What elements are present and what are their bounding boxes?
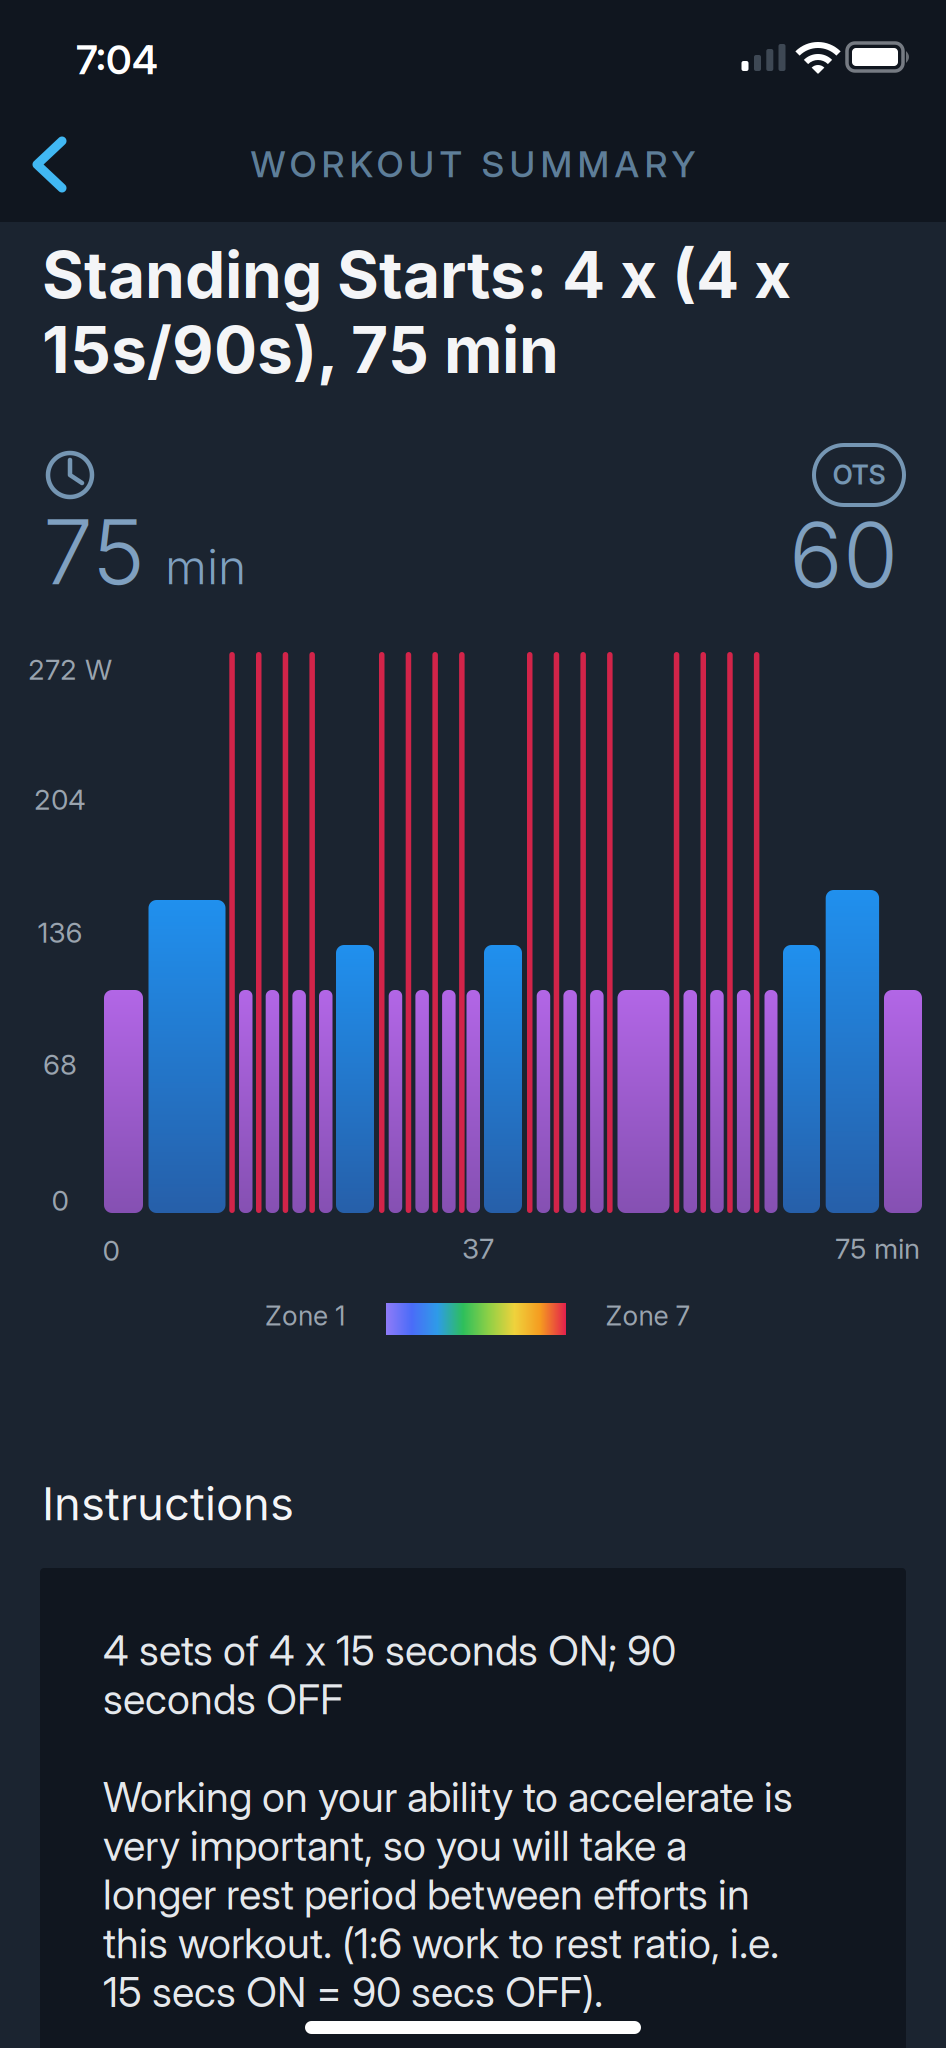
staticText: 204 [34, 783, 86, 816]
staticText: this workout. (1:6 work to rest ratio, i… [103, 1919, 779, 1968]
staticText: 15 secs ON = 90 secs OFF). [103, 1968, 603, 2016]
staticText: 60 [789, 502, 898, 607]
staticText: Zone 7 [605, 1300, 690, 1331]
staticText: longer rest period between efforts in [103, 1870, 750, 1919]
staticText: 4 sets of 4 x 15 seconds ON; 90 [103, 1626, 676, 1675]
staticText: seconds OFF [103, 1675, 343, 1724]
staticText: min [165, 538, 246, 595]
staticText: 15s/90s), 75 min [42, 312, 559, 387]
staticText: 136 [37, 916, 82, 949]
staticText: WORKOUT SUMMARY [250, 143, 695, 185]
staticText: Instructions [42, 1477, 294, 1530]
staticText: 7:04 [76, 36, 158, 83]
staticText: Working on your ability to accelerate is [103, 1772, 793, 1821]
staticText: 0 [51, 1184, 68, 1217]
staticText: 68 [43, 1048, 77, 1081]
staticText: 75 min [835, 1232, 920, 1265]
staticText: 272 W [28, 653, 112, 686]
staticText: Standing Starts: 4 x (4 x [42, 237, 791, 312]
staticText: 75 [43, 499, 145, 604]
staticText: 37 [462, 1232, 494, 1265]
staticText: OTS [832, 459, 885, 490]
staticText: 0 [102, 1234, 119, 1267]
staticText: Zone 1 [265, 1300, 345, 1331]
staticText: very important, so you will take a [103, 1821, 687, 1870]
button[interactable] [37, 141, 62, 188]
